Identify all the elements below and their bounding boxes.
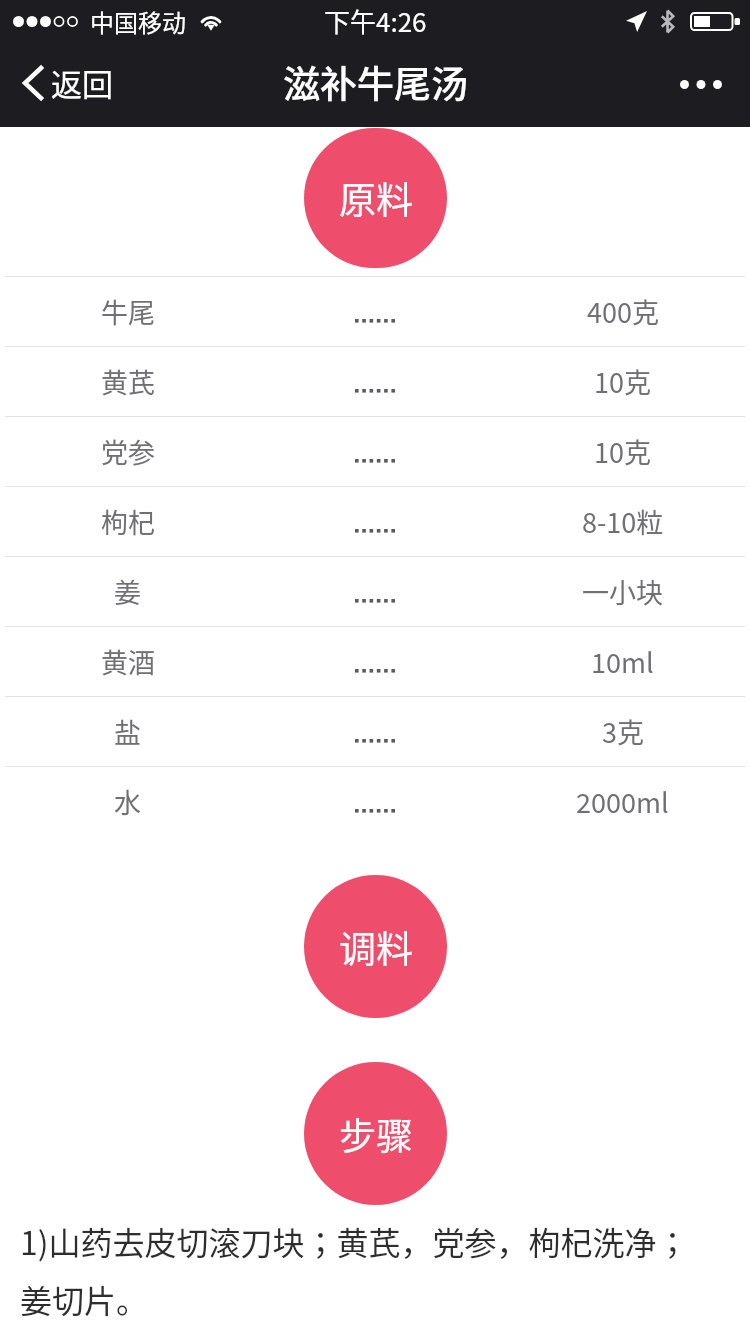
button[interactable]: More options xyxy=(658,58,750,111)
staticText: 3克 xyxy=(602,712,644,751)
button[interactable]: 黄芪 xyxy=(0,347,750,416)
staticText: 返回 xyxy=(51,60,113,105)
staticText: 2000ml xyxy=(576,782,669,821)
staticText: 姜 xyxy=(114,572,141,611)
button[interactable]: 姜 xyxy=(0,557,750,626)
staticText: 一小块 xyxy=(582,572,663,611)
button[interactable]: 原料 xyxy=(304,128,447,268)
staticText: 1)山药去皮切滚刀块；黄芪，党参，枸杞洗净；姜切片。 xyxy=(20,1209,710,1325)
button[interactable]: 黄酒 xyxy=(0,627,750,696)
button[interactable]: 牛尾 xyxy=(0,277,750,346)
staticText: 原料 xyxy=(339,171,413,225)
staticText: 中国移动 xyxy=(90,4,186,39)
staticText: 黄芪 xyxy=(101,362,155,401)
button[interactable]: 枸杞 xyxy=(0,487,750,556)
staticText: 水 xyxy=(114,782,141,821)
staticText: 8-10粒 xyxy=(582,502,664,541)
button[interactable]: Back xyxy=(0,48,133,117)
staticText: 10克 xyxy=(594,432,651,471)
staticText: 黄酒 xyxy=(101,642,155,681)
staticText: 10克 xyxy=(594,362,651,401)
button[interactable]: 盐 xyxy=(0,697,750,766)
staticText: 10ml xyxy=(591,642,654,681)
staticText: 枸杞 xyxy=(101,502,155,541)
button[interactable]: 调料 xyxy=(304,875,447,1018)
button[interactable]: 党参 xyxy=(0,417,750,486)
staticText: 牛尾 xyxy=(101,292,155,331)
staticText: 400克 xyxy=(587,292,659,331)
staticText: 下午4:26 xyxy=(324,2,427,40)
staticText: 滋补牛尾汤 xyxy=(283,55,468,109)
staticText: 步骤 xyxy=(339,1107,413,1161)
staticText: 盐 xyxy=(114,712,141,751)
staticText: 党参 xyxy=(101,432,155,471)
button[interactable]: 水 xyxy=(0,767,750,836)
button[interactable]: 步骤 xyxy=(304,1062,447,1205)
staticText: 调料 xyxy=(339,920,413,974)
